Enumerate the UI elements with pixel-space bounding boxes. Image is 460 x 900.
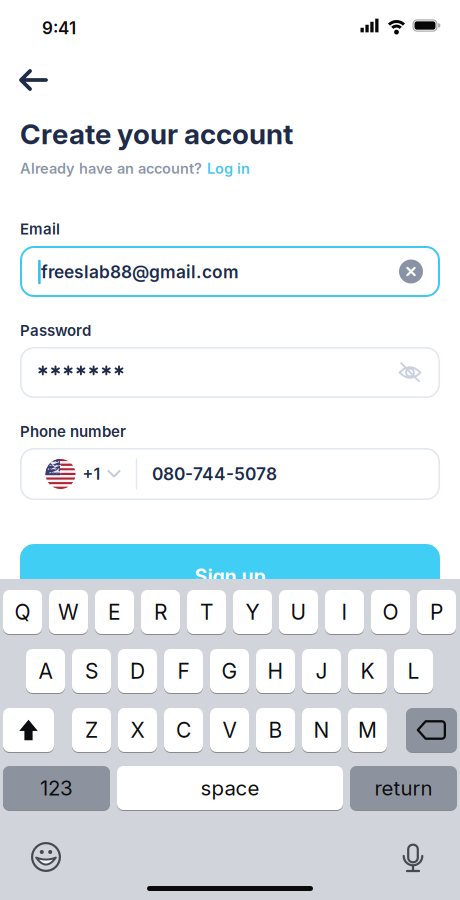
button[interactable]: N: [302, 708, 341, 752]
staticText: M: [358, 717, 377, 743]
button[interactable]: T: [187, 590, 226, 634]
staticText: Sign up: [194, 565, 265, 588]
staticText: D: [130, 658, 145, 684]
staticText: return: [374, 776, 432, 800]
button[interactable]: A: [26, 649, 65, 693]
staticText: Email: [20, 220, 60, 238]
button[interactable]: return: [350, 766, 457, 810]
button[interactable]: Shift: [3, 708, 54, 752]
button[interactable]: Clear text: [399, 259, 423, 283]
button[interactable]: L: [394, 649, 433, 693]
staticText: Create your account: [20, 117, 293, 151]
button[interactable]: I: [325, 590, 364, 634]
staticText: O: [382, 599, 398, 625]
button[interactable]: 123: [3, 766, 110, 810]
staticText: F: [177, 658, 189, 684]
button[interactable]: Emoji: [31, 842, 61, 872]
button[interactable]: G: [210, 649, 249, 693]
staticText: Z: [85, 717, 98, 743]
button[interactable]: Back: [19, 70, 48, 90]
staticText: T: [200, 599, 213, 625]
staticText: Log in: [207, 160, 250, 177]
staticText: E: [108, 599, 121, 625]
button[interactable]: B: [256, 708, 295, 752]
staticText: A: [38, 658, 52, 684]
staticText: S: [85, 658, 98, 684]
button[interactable]: P: [417, 590, 456, 634]
staticText: 9:41: [42, 18, 76, 38]
button[interactable]: K: [348, 649, 387, 693]
staticText: K: [360, 658, 374, 684]
staticText: 080-744-5078: [152, 463, 277, 484]
staticText: Q: [14, 599, 30, 625]
button[interactable]: Dictation: [403, 843, 423, 873]
button[interactable]: Email: [20, 246, 440, 297]
staticText: R: [154, 599, 167, 625]
button[interactable]: M: [348, 708, 387, 752]
button[interactable]: Y: [233, 590, 272, 634]
staticText: L: [407, 658, 419, 684]
button[interactable]: Z: [72, 708, 111, 752]
staticText: 123: [40, 776, 73, 800]
button[interactable]: Delete: [406, 708, 457, 752]
button[interactable]: R: [141, 590, 180, 634]
staticText: freeslab88@gmail.com: [41, 261, 239, 282]
button[interactable]: Password: [20, 347, 440, 398]
button[interactable]: Country code: [45, 459, 120, 489]
staticText: C: [176, 717, 191, 743]
staticText: W: [58, 599, 79, 625]
button[interactable]: E: [95, 590, 134, 634]
staticText: V: [222, 717, 236, 743]
button[interactable]: space: [117, 766, 343, 810]
staticText: space: [200, 776, 259, 800]
button[interactable]: W: [49, 590, 88, 634]
staticText: G: [221, 658, 237, 684]
button[interactable]: O: [371, 590, 410, 634]
staticText: Phone number: [20, 422, 126, 440]
button[interactable]: V: [210, 708, 249, 752]
button[interactable]: Sign up: [20, 544, 440, 609]
button[interactable]: S: [72, 649, 111, 693]
button[interactable]: J: [302, 649, 341, 693]
staticText: +1: [82, 464, 100, 484]
button[interactable]: C: [164, 708, 203, 752]
button[interactable]: U: [279, 590, 318, 634]
staticText: Already have an account?: [20, 160, 202, 177]
staticText: H: [267, 658, 283, 684]
staticText: I: [341, 599, 347, 625]
staticText: J: [315, 658, 327, 684]
staticText: U: [290, 599, 306, 625]
staticText: P: [430, 599, 443, 625]
button[interactable]: F: [164, 649, 203, 693]
staticText: X: [130, 717, 144, 743]
button[interactable]: Show password: [397, 361, 423, 384]
button[interactable]: Q: [3, 590, 42, 634]
button[interactable]: Phone number: [20, 448, 440, 500]
staticText: Password: [20, 321, 91, 339]
staticText: Y: [245, 599, 259, 625]
button[interactable]: Log in: [207, 160, 250, 177]
button[interactable]: D: [118, 649, 157, 693]
staticText: B: [268, 717, 282, 743]
button[interactable]: X: [118, 708, 157, 752]
staticText: N: [313, 717, 329, 743]
button[interactable]: H: [256, 649, 295, 693]
